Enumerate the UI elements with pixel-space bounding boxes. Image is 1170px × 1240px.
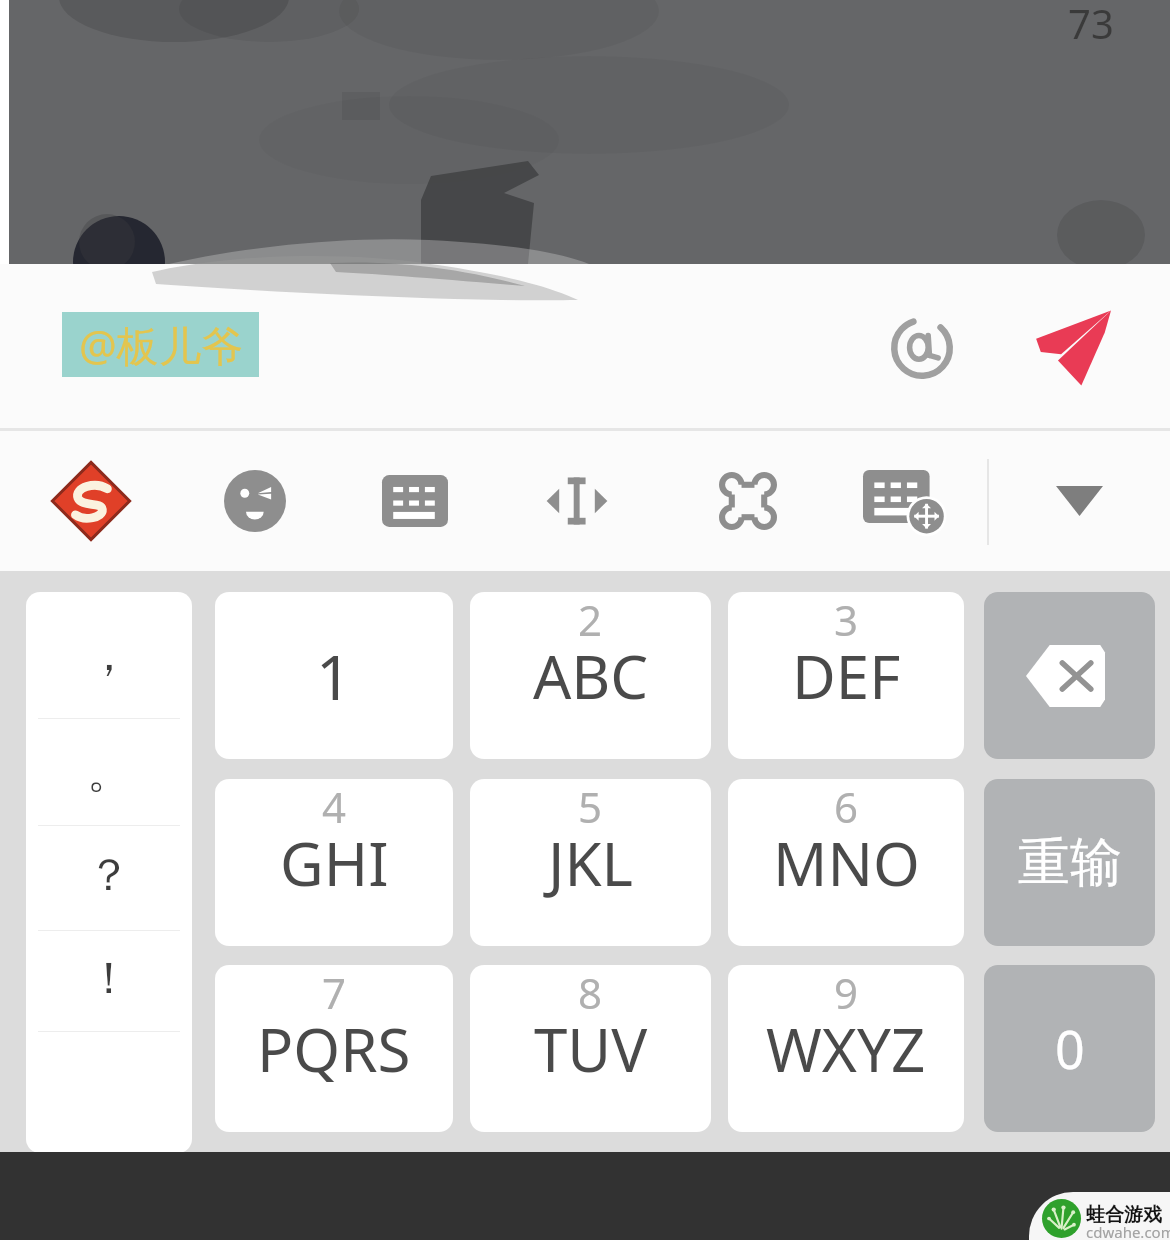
button[interactable]: Shortcuts	[706, 459, 790, 543]
staticText: ？	[87, 848, 131, 903]
button[interactable]: Emoji	[213, 459, 297, 543]
button[interactable]: 9	[728, 965, 964, 1132]
button[interactable]: 重输	[984, 779, 1155, 946]
button[interactable]: Mention someone	[874, 300, 970, 396]
staticText: 5	[578, 779, 603, 835]
staticText: DEF	[792, 635, 901, 717]
staticText: ！	[87, 951, 131, 1006]
staticText: 1	[316, 634, 352, 718]
staticText: @板儿爷	[79, 316, 243, 373]
staticText: 蛙合游戏	[1086, 1203, 1162, 1227]
staticText: WXYZ	[766, 1008, 926, 1090]
staticText: JKL	[548, 822, 633, 904]
staticText: PQRS	[257, 1008, 411, 1090]
button[interactable]: 0	[984, 965, 1155, 1132]
staticText: TUV	[534, 1008, 648, 1090]
button[interactable]: ！	[26, 931, 192, 1031]
button[interactable]: 2	[470, 592, 711, 759]
button[interactable]: Move cursor	[535, 459, 619, 543]
button[interactable]: Float keyboard	[862, 459, 946, 543]
staticText: 6	[834, 779, 859, 835]
staticText: ，	[87, 628, 131, 683]
staticText: cdwahe.com	[1086, 1222, 1170, 1240]
staticText: 3	[834, 592, 859, 648]
button[interactable]: 8	[470, 965, 711, 1132]
button[interactable]: @板儿爷	[62, 312, 259, 377]
button[interactable]: Keyboard layout	[373, 459, 457, 543]
staticText: ABC	[533, 635, 649, 717]
staticText: 。	[87, 745, 131, 800]
staticText: 73	[1068, 0, 1114, 50]
button[interactable]: Delete	[984, 592, 1155, 759]
button[interactable]: 7	[215, 965, 453, 1132]
button[interactable]: Send	[1024, 300, 1120, 396]
button[interactable]: 5	[470, 779, 711, 946]
staticText: 9	[834, 965, 859, 1021]
staticText: 2	[578, 592, 603, 648]
button[interactable]: Sogou input	[49, 459, 133, 543]
staticText: 7	[322, 965, 347, 1021]
button[interactable]: 3	[728, 592, 964, 759]
button[interactable]: 。	[26, 719, 192, 825]
button[interactable]: 1	[215, 592, 453, 759]
staticText: 4	[322, 779, 347, 835]
staticText: MNO	[773, 822, 920, 904]
button[interactable]: Hide keyboard	[1037, 459, 1121, 543]
button[interactable]: 4	[215, 779, 453, 946]
staticText: GHI	[280, 822, 389, 904]
staticText: 8	[578, 965, 603, 1021]
button[interactable]: ，	[26, 592, 192, 718]
staticText: 重输	[1018, 830, 1122, 896]
button[interactable]: 6	[728, 779, 964, 946]
staticText: 0	[1055, 1013, 1085, 1084]
button[interactable]: ？	[26, 826, 192, 930]
